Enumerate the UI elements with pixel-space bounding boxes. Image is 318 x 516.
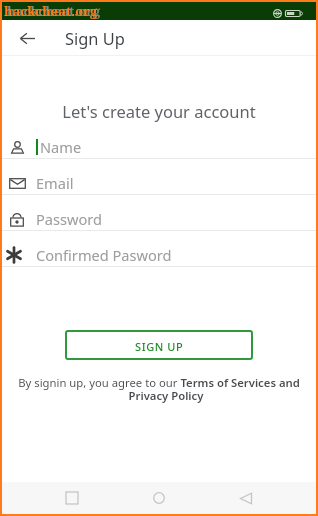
staticText: hackcheat.org bbox=[4, 2, 98, 20]
button[interactable]: Password bbox=[2, 195, 316, 231]
staticText: hackcheat.org bbox=[7, 2, 101, 20]
staticText: Name bbox=[40, 137, 82, 157]
button[interactable]: Confirmed Pasword bbox=[2, 231, 316, 267]
staticText: Password bbox=[36, 209, 103, 229]
button[interactable]: Back bbox=[14, 23, 40, 53]
button[interactable]: Recent apps bbox=[57, 483, 87, 513]
button[interactable]: SIGN UP bbox=[65, 330, 253, 360]
button[interactable]: Email bbox=[2, 159, 316, 195]
staticText: Sign Up bbox=[65, 27, 125, 49]
staticText: By signin up, you agree to our Terms of … bbox=[2, 375, 316, 390]
button[interactable]: Name bbox=[2, 123, 316, 159]
staticText: Let's create your account bbox=[2, 100, 316, 122]
staticText: SIGN UP bbox=[135, 339, 184, 354]
staticText: Email bbox=[36, 173, 74, 193]
staticText: Privacy Policy bbox=[9, 388, 318, 403]
staticText: Confirmed Pasword bbox=[36, 245, 172, 265]
button[interactable]: Back bbox=[231, 483, 261, 513]
button[interactable]: Home bbox=[144, 483, 174, 513]
